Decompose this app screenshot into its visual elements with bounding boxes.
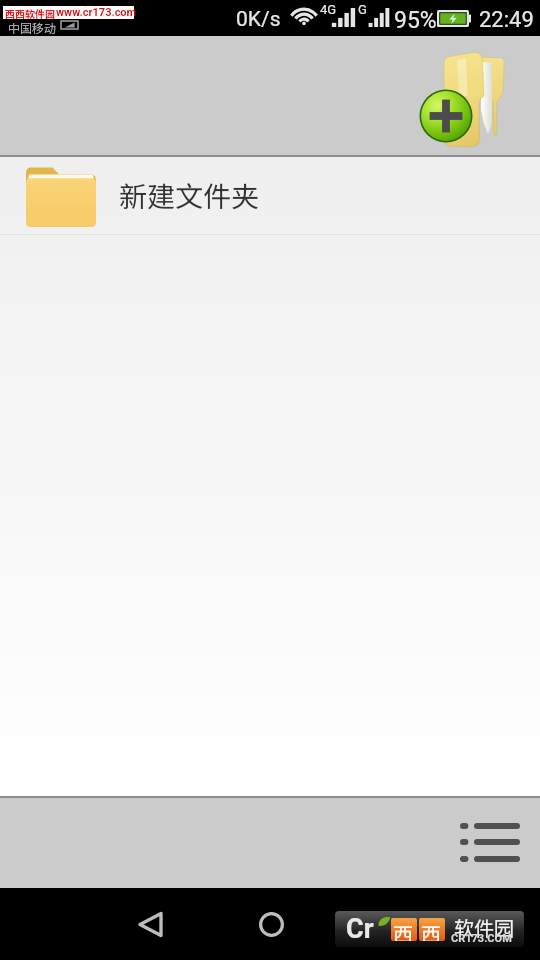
button[interactable]: Recents — [350, 888, 430, 960]
staticText: 西 — [421, 919, 441, 941]
staticText: 中国移动 — [8, 19, 57, 36]
staticText: 新建文件夹 — [119, 175, 260, 216]
staticText: Cr — [346, 913, 374, 945]
staticText: 软件园 — [454, 913, 514, 942]
staticText: 西 — [393, 919, 413, 941]
staticText: G — [358, 2, 367, 17]
button[interactable]: New folder — [414, 48, 510, 150]
button[interactable]: Back — [110, 888, 190, 960]
staticText: 95% — [394, 7, 437, 34]
staticText: 4G — [320, 2, 337, 17]
staticText: 西西软件园 — [5, 6, 55, 19]
button[interactable]: Home — [231, 888, 311, 960]
button[interactable]: 新建文件夹 — [0, 157, 540, 235]
staticText: 0K/s — [236, 7, 281, 32]
staticText: www.cr173.com — [56, 6, 137, 19]
staticText: 22:49 — [479, 7, 534, 33]
staticText: CR173.COM — [451, 932, 512, 945]
button[interactable]: List view — [448, 812, 528, 872]
